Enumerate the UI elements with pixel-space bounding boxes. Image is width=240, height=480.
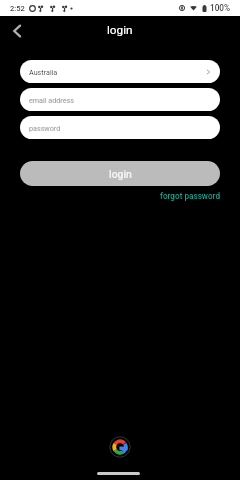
button[interactable]: Sign in with Google xyxy=(109,436,131,458)
button[interactable]: login xyxy=(20,161,220,186)
staticText: 100% xyxy=(210,3,230,13)
staticText: login xyxy=(109,168,132,180)
staticText: email address xyxy=(29,96,74,104)
button[interactable]: forgot password xyxy=(160,191,220,201)
button[interactable]: password xyxy=(20,116,220,139)
button[interactable]: Australia xyxy=(20,60,220,83)
staticText: password xyxy=(29,124,61,132)
button[interactable]: Back xyxy=(6,20,28,42)
staticText: 2:52 xyxy=(10,4,25,13)
staticText: Australia xyxy=(29,68,58,76)
staticText: login xyxy=(107,23,133,37)
button[interactable]: email address xyxy=(20,88,220,111)
staticText: forgot password xyxy=(160,191,220,201)
